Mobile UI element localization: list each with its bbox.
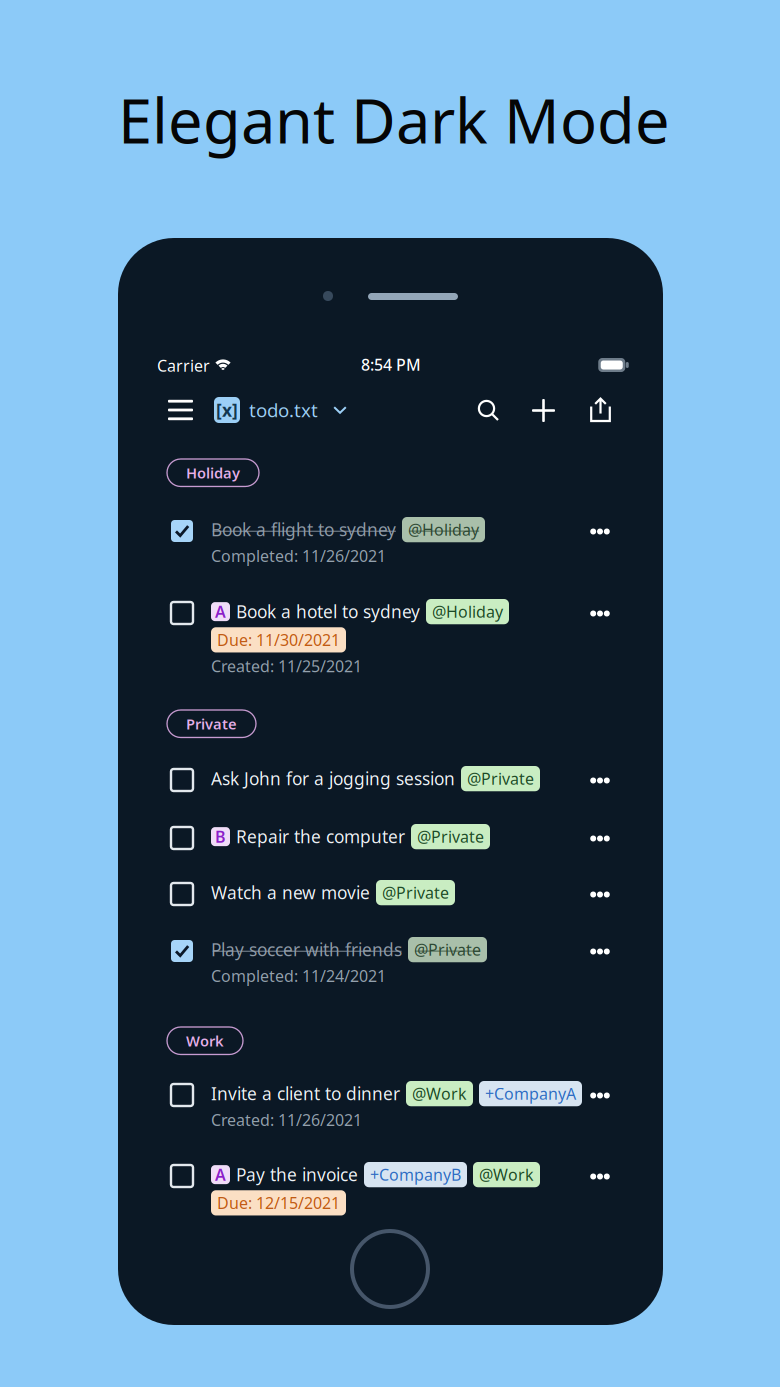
staticText: Completed: 11/26/2021 [211, 545, 386, 566]
staticText: Ask John for a jogging session [211, 767, 455, 790]
staticText: Watch a new movie [211, 881, 370, 904]
staticText: B [215, 826, 226, 847]
staticText: Book a hotel to sydney [236, 600, 420, 623]
button[interactable]: Book a flight to sydney [171, 520, 661, 922]
button[interactable]: [x] [214, 397, 347, 423]
staticText: @Private [417, 826, 484, 847]
staticText: Holiday [186, 463, 240, 482]
staticText: Pay the invoice [236, 1163, 358, 1186]
staticText: @Private [382, 882, 449, 903]
staticText: Repair the computer [236, 825, 405, 848]
button[interactable]: Search [477, 399, 499, 421]
staticText: Work [186, 1031, 224, 1050]
staticText: Due: 11/30/2021 [217, 629, 340, 650]
button[interactable]: Menu [168, 400, 193, 420]
button[interactable]: Watch a new movie [171, 883, 661, 1104]
button[interactable]: Holiday [167, 459, 259, 486]
staticText: 8:54 PM [361, 354, 421, 375]
staticText: @Holiday [432, 601, 503, 622]
staticText: @Private [467, 768, 534, 789]
staticText: @Work [479, 1164, 534, 1185]
staticText: Carrier [157, 355, 210, 376]
button[interactable]: Work [167, 1027, 243, 1054]
staticText: @Private [414, 939, 481, 960]
button[interactable]: Private [167, 710, 256, 737]
button[interactable]: Add task [532, 399, 555, 422]
staticText: Elegant Dark Mode [118, 79, 670, 160]
staticText: Private [186, 714, 237, 733]
staticText: +CompanyA [485, 1083, 576, 1104]
staticText: todo.txt [249, 398, 318, 422]
staticText: Created: 11/26/2021 [211, 1109, 362, 1130]
staticText: Play soccer with friends [211, 938, 402, 961]
button[interactable]: Invite a client to dinner [171, 1084, 661, 1204]
button[interactable]: Ask John for a jogging session [171, 769, 661, 1047]
staticText: [x] [216, 398, 238, 421]
staticText: A [215, 1164, 226, 1185]
button[interactable]: B [171, 827, 661, 1076]
staticText: Due: 12/15/2021 [217, 1192, 340, 1213]
button[interactable]: Play soccer with friends [171, 940, 661, 1132]
button[interactable]: A [171, 1165, 661, 1245]
staticText: @Holiday [408, 519, 479, 540]
button[interactable]: Share [589, 397, 612, 422]
staticText: Invite a client to dinner [211, 1082, 400, 1105]
staticText: +CompanyB [370, 1164, 461, 1185]
staticText: A [215, 601, 226, 622]
staticText: Created: 11/25/2021 [211, 655, 362, 677]
button[interactable]: A [171, 602, 661, 963]
staticText: Book a flight to sydney [211, 518, 396, 541]
staticText: Completed: 11/24/2021 [211, 965, 386, 986]
staticText: @Work [412, 1083, 467, 1104]
